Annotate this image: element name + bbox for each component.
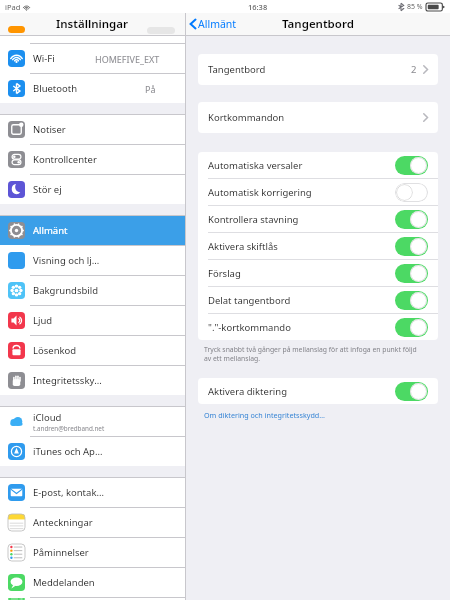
staticText: Lösenkod xyxy=(33,344,77,357)
button[interactable]: "."-kortkommando xyxy=(198,314,438,340)
staticText: iTunes och App Store xyxy=(33,445,105,458)
button[interactable]: Förslag xyxy=(198,260,438,286)
staticText: Anteckningar xyxy=(33,516,93,529)
button[interactable]: Bluetooth xyxy=(0,74,185,103)
staticText: 2 xyxy=(411,63,417,76)
staticText: Wi-Fi xyxy=(33,52,55,65)
staticText: Integritetsskydd xyxy=(33,374,105,387)
other: På xyxy=(395,156,428,175)
button[interactable]: Stör ej xyxy=(0,175,185,204)
other: På xyxy=(395,382,428,401)
button[interactable]: Notiser xyxy=(0,115,185,144)
other: På xyxy=(395,318,428,337)
button[interactable]: Tillbaka xyxy=(186,14,243,34)
button[interactable]: Lösenkod xyxy=(0,336,185,365)
staticText: Aktivera diktering xyxy=(208,385,287,398)
staticText: Bluetooth xyxy=(33,82,78,95)
staticText: Påminnelser xyxy=(33,546,89,559)
staticText: Ljud xyxy=(33,314,53,327)
staticText: Automatisk korrigering xyxy=(208,186,312,199)
staticText: Stör ej xyxy=(33,183,62,196)
button[interactable]: Aktivera diktering xyxy=(198,378,438,404)
button[interactable]: Aktivera skiftlås xyxy=(198,233,438,259)
staticText: E-post, kontakter, kalendrar xyxy=(33,486,105,499)
other: Tillbaka xyxy=(190,19,196,29)
button[interactable]: Ljud xyxy=(0,306,185,335)
staticText: Automatiska versaler xyxy=(208,159,303,172)
button[interactable]: Integritetsskydd xyxy=(0,366,185,395)
staticText: Tangentbord xyxy=(282,16,354,32)
button[interactable]: E-post, kontakter, kalendrar xyxy=(0,478,185,507)
button[interactable]: FaceTime xyxy=(0,598,185,600)
staticText: Meddelanden xyxy=(33,576,95,589)
button[interactable]: iTunes och App Store xyxy=(0,437,185,466)
button[interactable]: iCloud xyxy=(0,407,185,436)
staticText: 85 % xyxy=(407,2,423,12)
button[interactable]: Delat tangentbord xyxy=(198,287,438,313)
staticText: Delat tangentbord xyxy=(208,294,291,307)
button[interactable]: Meddelanden xyxy=(0,568,185,597)
staticText: På xyxy=(145,83,156,95)
staticText: iCloud xyxy=(33,411,62,424)
staticText: Kontrollera stavning xyxy=(208,213,299,226)
button[interactable]: Kortkommandon xyxy=(198,102,438,133)
staticText: Notiser xyxy=(33,123,66,136)
staticText: Tangentbord xyxy=(208,63,266,76)
button[interactable]: Tangentbord xyxy=(198,54,438,85)
staticText: t.andren@bredband.net xyxy=(33,424,105,433)
staticText: Allmänt xyxy=(198,17,237,31)
staticText: Aktivera skiftlås xyxy=(208,240,278,253)
other: På xyxy=(395,264,428,283)
staticText: Bakgrundsbild xyxy=(33,284,99,297)
staticText: Kortkommandon xyxy=(208,111,285,124)
staticText: Förslag xyxy=(208,267,241,280)
button[interactable]: Wi-Fi xyxy=(0,44,185,73)
staticText: Kontrollcenter xyxy=(33,153,97,166)
button[interactable]: Kontrollcenter xyxy=(0,145,185,174)
other: På xyxy=(395,291,428,310)
button[interactable]: Automatiska versaler xyxy=(198,152,438,178)
staticText: "."-kortkommando xyxy=(208,321,291,334)
staticText: 16:38 xyxy=(248,2,268,12)
staticText: Visning och ljusstyrka xyxy=(33,254,105,267)
other: På xyxy=(395,237,428,256)
button[interactable]: Automatisk korrigering xyxy=(198,179,438,205)
button[interactable]: Påminnelser xyxy=(0,538,185,567)
button[interactable]: Visning och ljusstyrka xyxy=(0,246,185,275)
staticText: Allmänt xyxy=(33,224,68,237)
button[interactable]: Kontrollera stavning xyxy=(198,206,438,232)
staticText: iPad xyxy=(5,2,21,12)
other: På xyxy=(395,210,428,229)
button[interactable]: Bakgrundsbild xyxy=(0,276,185,305)
staticText: Inställningar xyxy=(56,16,129,32)
button[interactable]: Om diktering och integritetsskydd… xyxy=(204,410,325,420)
staticText: HOMEFIVE_EXT xyxy=(95,53,160,65)
button[interactable]: Anteckningar xyxy=(0,508,185,537)
other: Av xyxy=(395,183,428,202)
button[interactable]: Allmänt xyxy=(0,216,185,245)
staticText: Tryck snabbt två gånger på mellanslag fö… xyxy=(204,345,417,363)
